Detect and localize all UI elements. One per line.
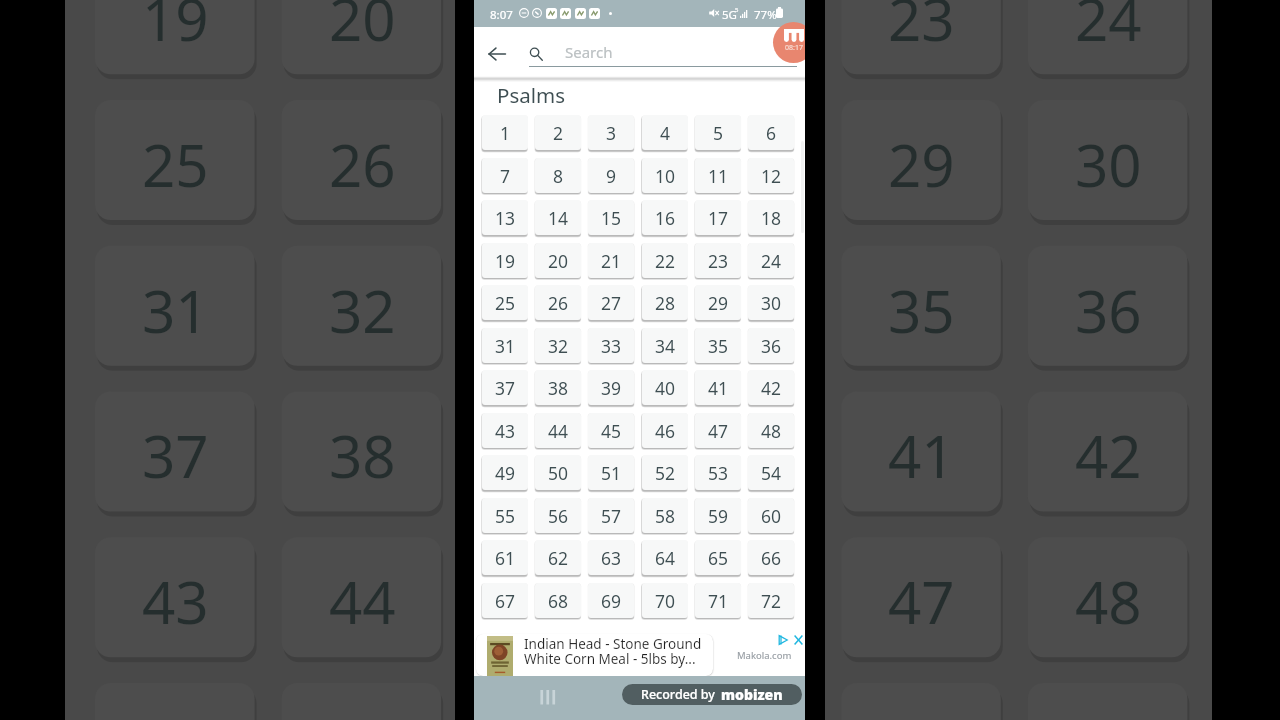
button[interactable]: 13 [482, 200, 528, 235]
button[interactable]: 72 [748, 583, 794, 618]
button[interactable]: 46 [642, 413, 688, 448]
button[interactable]: 5 [695, 115, 741, 150]
button[interactable]: 40 [642, 370, 688, 405]
button[interactable]: 29 [695, 285, 741, 320]
button[interactable]: Recent apps [536, 685, 558, 705]
staticText: 31 [142, 271, 209, 350]
button[interactable]: Search [529, 36, 797, 68]
button[interactable]: 27 [588, 285, 634, 320]
button[interactable]: 24 [748, 243, 794, 278]
button[interactable]: 54 [748, 455, 794, 490]
button[interactable]: 69 [588, 583, 634, 618]
button[interactable]: 15 [588, 200, 634, 235]
button[interactable]: 63 [588, 540, 634, 575]
button[interactable]: 23 [695, 243, 741, 278]
button[interactable]: 56 [535, 498, 581, 533]
button[interactable]: 19 [482, 243, 528, 278]
button[interactable]: 6 [748, 115, 794, 150]
button[interactable]: 14 [535, 200, 581, 235]
button[interactable]: 43 [482, 413, 528, 448]
button[interactable]: 36 [748, 328, 794, 363]
button[interactable]: 71 [695, 583, 741, 618]
staticText: 27 [515, 125, 582, 204]
staticText: 37 [142, 416, 209, 495]
button[interactable]: 26 [535, 285, 581, 320]
button[interactable]: Back [483, 40, 511, 68]
button[interactable]: 60 [748, 498, 794, 533]
staticText: 30 [1075, 125, 1142, 204]
button[interactable]: 70 [642, 583, 688, 618]
button[interactable]: 22 [642, 243, 688, 278]
staticText: 37 [495, 376, 516, 400]
button[interactable]: 38 [535, 370, 581, 405]
staticText: 61 [495, 546, 516, 570]
button[interactable]: 9 [588, 158, 634, 193]
button[interactable]: 31 [482, 328, 528, 363]
button[interactable]: 62 [535, 540, 581, 575]
button[interactable]: 58 [642, 498, 688, 533]
staticText: 11 [708, 164, 729, 188]
button[interactable]: 21 [588, 243, 634, 278]
button[interactable]: 55 [482, 498, 528, 533]
staticText: 35 [708, 334, 729, 358]
button[interactable]: 7 [482, 158, 528, 193]
staticText: 10 [655, 164, 676, 188]
button[interactable]: 34 [642, 328, 688, 363]
button[interactable]: 61 [482, 540, 528, 575]
button[interactable]: 44 [535, 413, 581, 448]
button[interactable]: 11 [695, 158, 741, 193]
button[interactable]: 45 [588, 413, 634, 448]
button[interactable]: 18 [748, 200, 794, 235]
button[interactable]: Indian Head - Stone Ground [476, 634, 713, 676]
button[interactable]: 12 [748, 158, 794, 193]
staticText: 41 [888, 416, 955, 495]
button[interactable]: Recorded by [622, 684, 802, 705]
button[interactable]: 57 [588, 498, 634, 533]
button[interactable]: 2 [535, 115, 581, 150]
button[interactable]: 48 [748, 413, 794, 448]
button[interactable]: 64 [642, 540, 688, 575]
button[interactable]: 20 [535, 243, 581, 278]
button[interactable]: Close ad [794, 635, 803, 645]
button[interactable]: 3 [588, 115, 634, 150]
staticText: 12 [761, 164, 782, 188]
staticText: 34 [702, 271, 769, 350]
button[interactable]: 8 [535, 158, 581, 193]
button[interactable]: 16 [642, 200, 688, 235]
button[interactable]: 25 [482, 285, 528, 320]
staticText: 39 [601, 376, 622, 400]
button[interactable]: 17 [695, 200, 741, 235]
staticText: 71 [708, 589, 729, 613]
button[interactable]: Ad choices [778, 635, 788, 645]
staticText: 21 [515, 0, 582, 58]
button[interactable]: 30 [748, 285, 794, 320]
button[interactable]: 28 [642, 285, 688, 320]
button[interactable]: 52 [642, 455, 688, 490]
button[interactable]: 50 [535, 455, 581, 490]
button[interactable]: 66 [748, 540, 794, 575]
button[interactable]: 41 [695, 370, 741, 405]
button[interactable]: 53 [695, 455, 741, 490]
button[interactable]: 35 [695, 328, 741, 363]
button[interactable]: 1 [482, 115, 528, 150]
button[interactable]: 51 [588, 455, 634, 490]
button[interactable]: 47 [695, 413, 741, 448]
staticText: mobizen [721, 685, 783, 704]
staticText: 17 [708, 206, 729, 230]
button[interactable]: 37 [482, 370, 528, 405]
button[interactable]: 33 [588, 328, 634, 363]
button[interactable]: 32 [535, 328, 581, 363]
button[interactable]: 49 [482, 455, 528, 490]
button[interactable]: 39 [588, 370, 634, 405]
button[interactable]: 59 [695, 498, 741, 533]
staticText: 8:07 [490, 7, 513, 23]
button[interactable]: 67 [482, 583, 528, 618]
button[interactable]: Search [526, 44, 545, 63]
button[interactable]: 65 [695, 540, 741, 575]
staticText: 1 [500, 121, 511, 145]
button[interactable]: 10 [642, 158, 688, 193]
button[interactable]: 4 [642, 115, 688, 150]
button[interactable]: 68 [535, 583, 581, 618]
button[interactable]: 42 [748, 370, 794, 405]
